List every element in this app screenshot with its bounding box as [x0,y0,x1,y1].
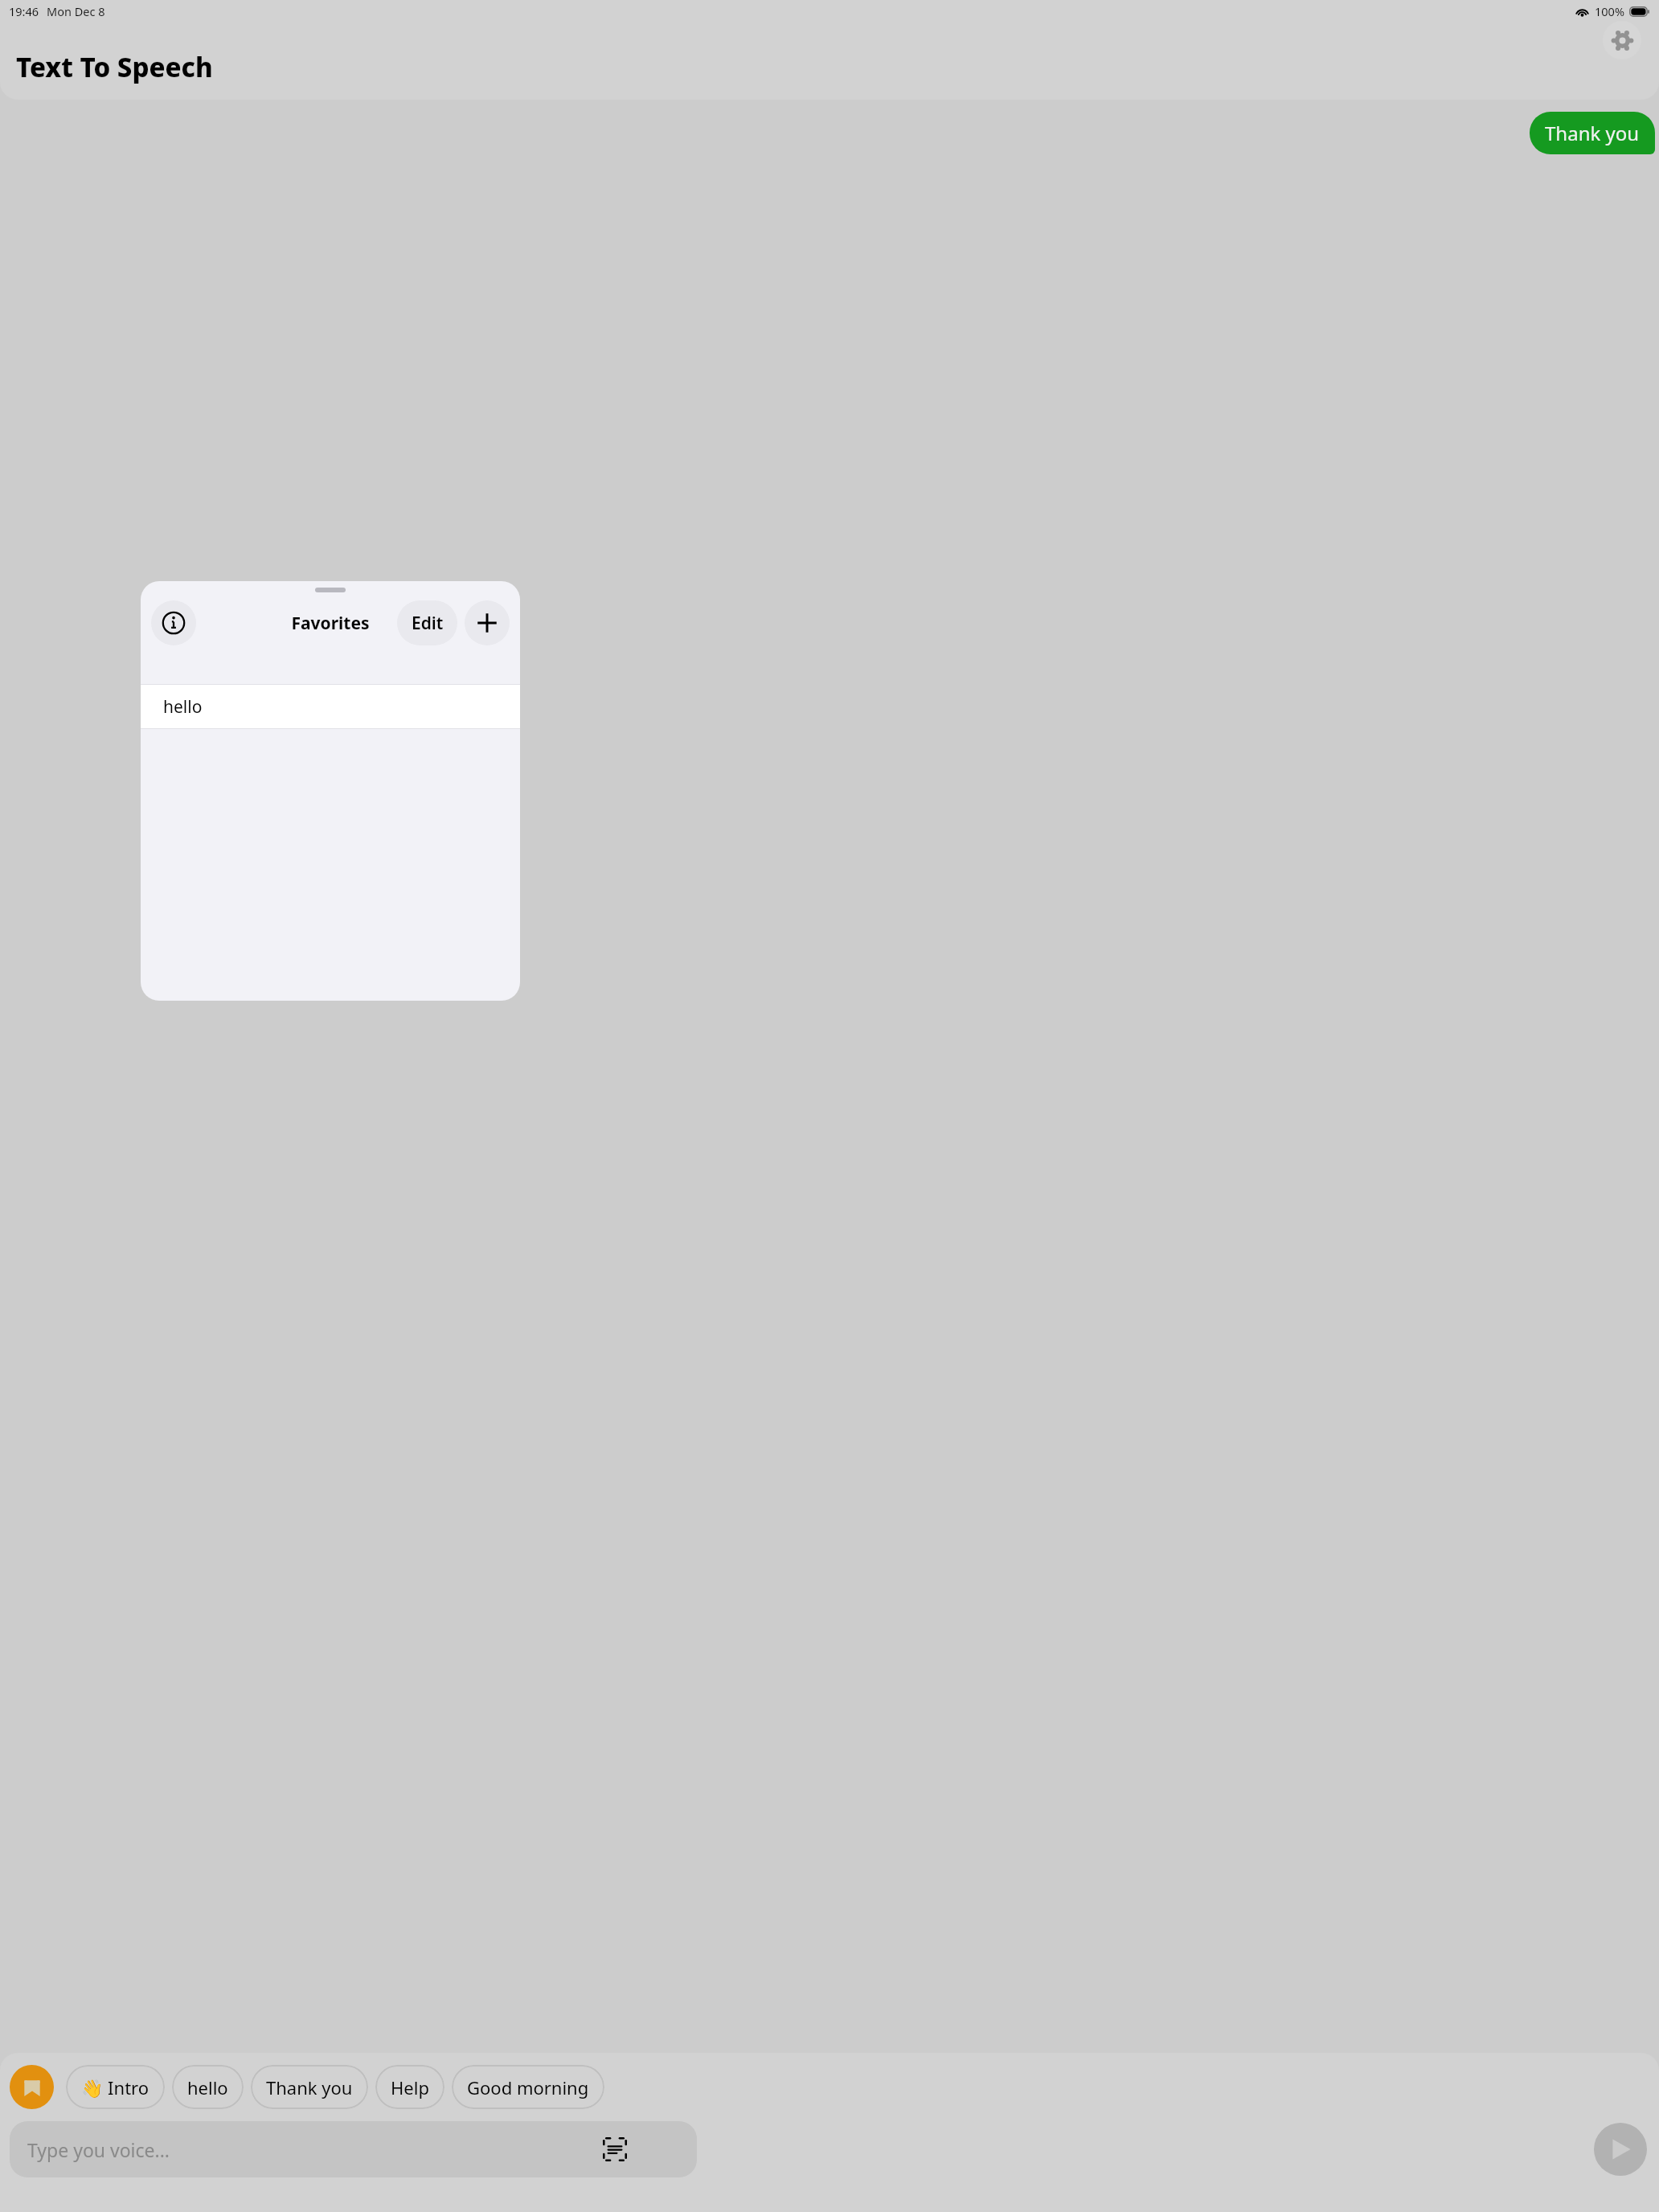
button[interactable]: hello [141,685,520,728]
button[interactable]: Help [375,2065,444,2109]
staticText: Mon Dec 8 [47,3,105,19]
button[interactable]: Settings [1603,21,1641,59]
button[interactable]: Good morning [452,2065,604,2109]
staticText: 19:46 [9,3,39,19]
button[interactable]: Thank you [251,2065,368,2109]
staticText: Text To Speech [16,49,213,85]
staticText: hello [187,2075,228,2099]
staticText: Edit [412,612,444,635]
button[interactable]: Favorites [10,2065,54,2109]
staticText: Favorites [291,612,370,635]
staticText: 100% [1595,3,1624,19]
button[interactable]: Add favorite [465,600,510,645]
staticText: hello [163,695,203,719]
button[interactable]: Scan text [601,2136,629,2163]
button[interactable]: Information [151,600,196,645]
button[interactable]: Speak [1594,2123,1647,2176]
staticText: Type you voice... [27,2137,170,2162]
staticText: Thank you [1545,120,1640,146]
button[interactable]: Edit [397,600,457,645]
staticText: 👋 Intro [81,2075,150,2099]
button[interactable]: Thank you [1530,112,1655,154]
staticText: Help [391,2075,429,2099]
button[interactable]: Type you voice... [10,2121,697,2177]
staticText: Thank you [266,2075,353,2099]
button[interactable]: hello [172,2065,244,2109]
staticText: Good morning [467,2075,589,2099]
button[interactable]: 👋 Intro [66,2065,165,2109]
